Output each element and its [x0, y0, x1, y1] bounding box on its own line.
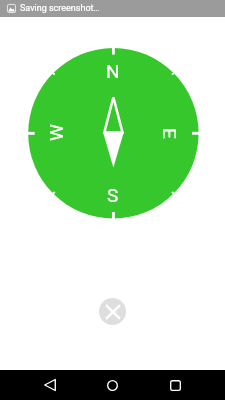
- staticText: W: [45, 124, 67, 141]
- staticText: Saving screenshot…: [20, 3, 100, 14]
- staticText: S: [107, 184, 119, 206]
- staticText: E: [159, 128, 181, 139]
- button[interactable]: Back: [30, 370, 70, 400]
- staticText: N: [106, 60, 120, 82]
- button[interactable]: Close: [99, 298, 126, 325]
- button[interactable]: Home: [92, 370, 132, 400]
- button[interactable]: Recent apps: [155, 370, 195, 400]
